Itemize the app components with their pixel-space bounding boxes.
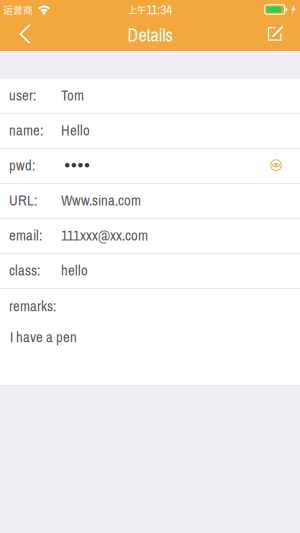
staticText: name: [9, 120, 43, 140]
button[interactable]: name: [0, 114, 300, 148]
staticText: email: [9, 225, 42, 245]
staticText: I have a pen [10, 327, 77, 347]
staticText: user: [9, 85, 36, 105]
staticText: 上午 [128, 3, 146, 16]
button[interactable]: class: [0, 254, 300, 288]
staticText: class: [9, 260, 40, 280]
staticText: Hello [61, 120, 90, 140]
staticText: 11:34 [146, 0, 172, 18]
staticText: 运营商 [3, 2, 33, 16]
button[interactable]: Back [8, 17, 42, 51]
staticText: Www.sina.com [61, 190, 141, 210]
staticText: remarks: [9, 296, 56, 316]
button[interactable]: email: [0, 219, 300, 253]
staticText: 111xxx@xx.com [61, 225, 148, 245]
staticText: hello [61, 260, 88, 280]
button[interactable]: Compose [258, 17, 292, 51]
staticText: pwd: [9, 155, 35, 175]
staticText: URL: [9, 190, 37, 210]
button[interactable]: pwd: [0, 149, 300, 183]
staticText: Details [127, 23, 172, 47]
button[interactable]: user: [0, 79, 300, 113]
button[interactable]: URL: [0, 184, 300, 218]
staticText: Tom [61, 85, 84, 105]
